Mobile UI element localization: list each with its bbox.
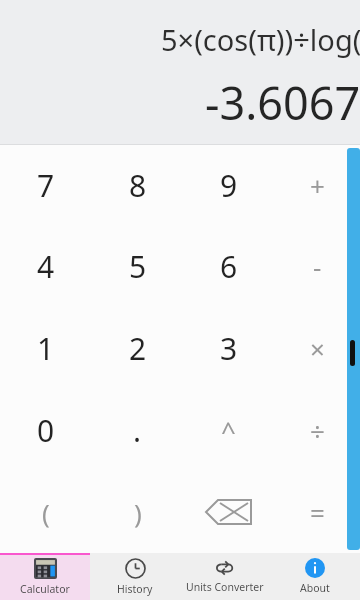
staticText: Calculator xyxy=(20,582,70,596)
button[interactable]: 1 xyxy=(0,307,92,389)
staticText: ÷ xyxy=(310,413,325,448)
button[interactable]: 3 xyxy=(183,307,274,389)
button[interactable]: History xyxy=(90,553,180,600)
button[interactable]: Calculator xyxy=(0,553,90,600)
staticText: Units Converter xyxy=(186,580,264,594)
button[interactable]: ^ xyxy=(183,389,274,471)
button[interactable]: - xyxy=(274,226,360,307)
button[interactable]: 0 xyxy=(0,389,92,471)
staticText: + xyxy=(310,168,325,203)
button[interactable]: 2 xyxy=(92,307,183,389)
button[interactable]: About xyxy=(270,553,360,600)
button[interactable]: . xyxy=(92,389,183,471)
button[interactable]: + xyxy=(274,145,360,226)
staticText: 1 xyxy=(37,328,55,369)
staticText: 5 xyxy=(129,246,147,287)
staticText: ^ xyxy=(221,413,236,448)
button[interactable]: ( xyxy=(0,471,92,553)
staticText: = xyxy=(310,495,325,530)
button[interactable]: 7 xyxy=(0,145,92,226)
staticText: History xyxy=(117,582,153,596)
button[interactable]: ) xyxy=(92,471,183,553)
staticText: . xyxy=(133,410,142,451)
button[interactable]: 9 xyxy=(183,145,274,226)
button[interactable]: 5 xyxy=(92,226,183,307)
button[interactable]: 4 xyxy=(0,226,92,307)
other: Scroll xyxy=(347,148,360,550)
staticText: 6 xyxy=(220,246,238,287)
staticText: ( xyxy=(42,495,50,530)
button[interactable]: 6 xyxy=(183,226,274,307)
staticText: 3 xyxy=(220,328,238,369)
staticText: About xyxy=(300,581,330,595)
button[interactable]: 8 xyxy=(92,145,183,226)
staticText: -3.60674 xyxy=(26,72,360,133)
button[interactable]: = xyxy=(274,471,360,553)
staticText: 4 xyxy=(37,246,55,287)
staticText: 0 xyxy=(37,410,55,451)
staticText: 2 xyxy=(129,328,147,369)
button[interactable]: ÷ xyxy=(274,389,360,471)
staticText: 9 xyxy=(220,165,238,206)
staticText: - xyxy=(313,249,322,284)
button[interactable]: Backspace xyxy=(183,471,274,553)
staticText: ) xyxy=(134,495,142,530)
staticText: 7 xyxy=(37,165,55,206)
staticText: 5×(cos(π))÷log(4 xyxy=(18,20,360,59)
button[interactable]: Units Converter xyxy=(180,553,270,600)
button[interactable]: × xyxy=(274,307,360,389)
staticText: × xyxy=(310,331,325,366)
staticText: 8 xyxy=(129,165,147,206)
